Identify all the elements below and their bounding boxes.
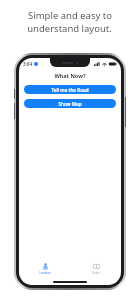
staticText: Location bbox=[39, 271, 51, 275]
staticText: understand layout. bbox=[27, 22, 112, 35]
button[interactable]: Tell me the Road bbox=[24, 85, 116, 94]
staticText: Simple and easy to bbox=[28, 9, 112, 22]
staticText: 3:04 bbox=[23, 61, 32, 67]
button[interactable]: Location bbox=[36, 262, 54, 276]
staticText: Show Map bbox=[58, 101, 82, 107]
staticText: What Now? bbox=[54, 72, 86, 79]
button[interactable]: Guide bbox=[89, 262, 103, 276]
staticText: Tell me the Road bbox=[51, 87, 89, 93]
button[interactable]: Show Map bbox=[24, 99, 116, 108]
staticText: Guide bbox=[92, 271, 100, 275]
